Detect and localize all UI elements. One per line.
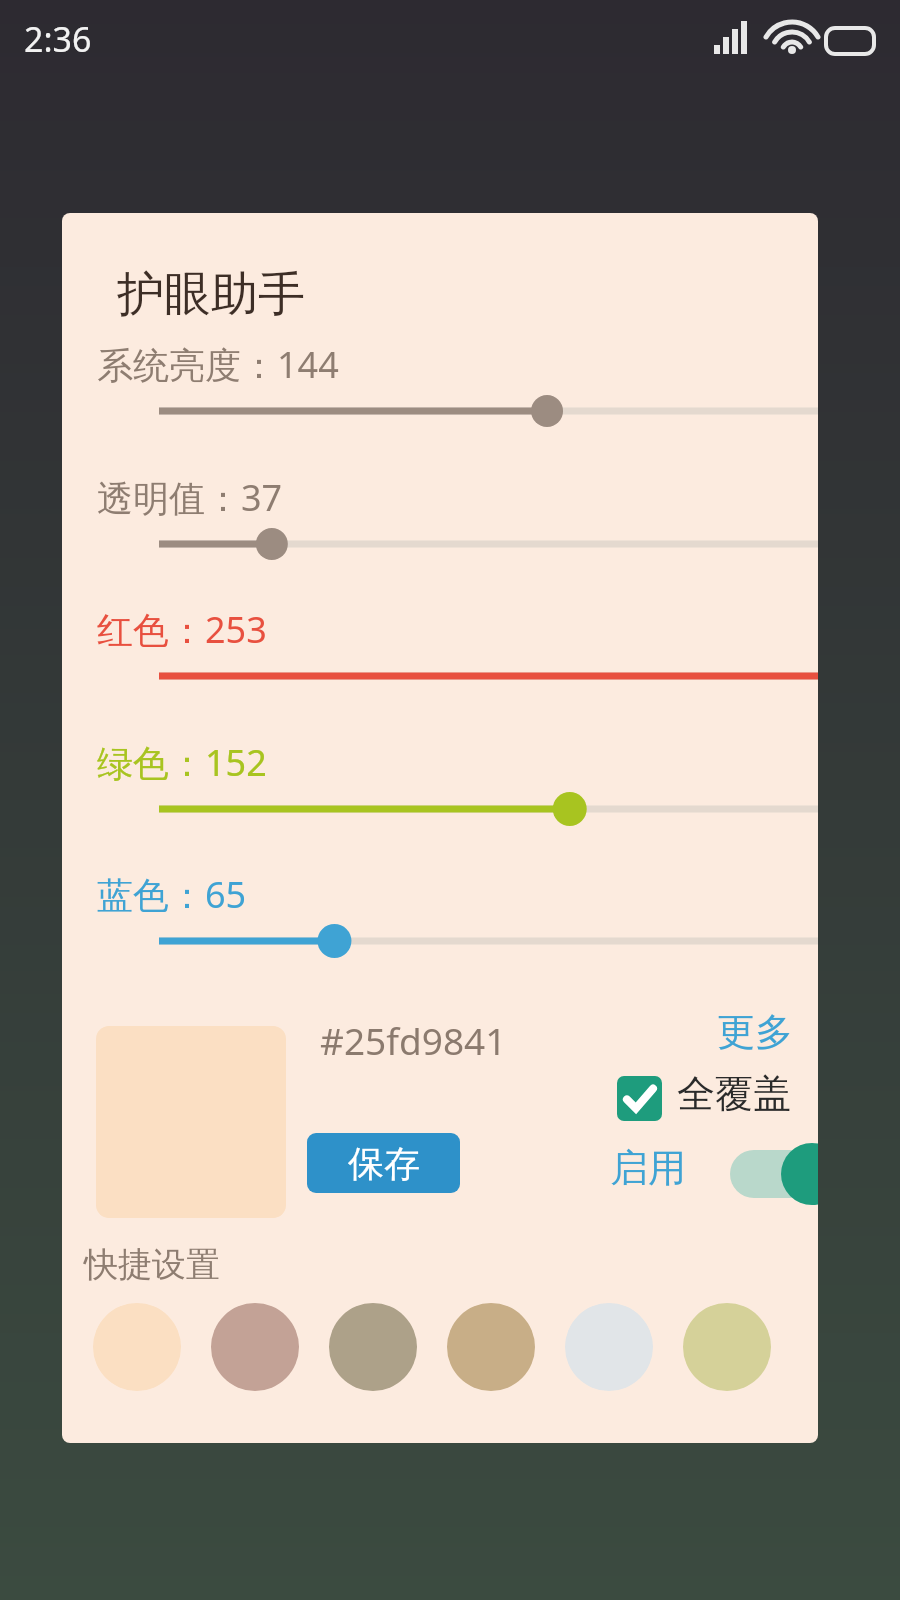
staticText: 护眼助手 <box>117 265 305 324</box>
button[interactable]: Red <box>62 653 818 699</box>
button[interactable]: 保存 <box>307 1133 460 1193</box>
button[interactable]: Preset 3 <box>329 1303 417 1391</box>
staticText: 红色：253 <box>97 605 267 654</box>
button[interactable]: 更多 <box>717 1008 793 1056</box>
staticText: 全覆盖 <box>677 1070 791 1118</box>
button[interactable]: Preset 1 <box>93 1303 181 1391</box>
staticText: 2:36 <box>24 16 92 62</box>
staticText: 蓝色：65 <box>97 870 247 919</box>
button[interactable]: Preset 2 <box>211 1303 299 1391</box>
staticText: 更多 <box>717 1008 793 1056</box>
button[interactable]: Blue <box>62 918 818 964</box>
button[interactable]: Preset 6 <box>683 1303 771 1391</box>
button[interactable]: Preset 4 <box>447 1303 535 1391</box>
staticText: 启用 <box>610 1144 686 1192</box>
staticText: 保存 <box>348 1141 420 1186</box>
button[interactable]: 启用 <box>602 1138 818 1198</box>
staticText: 绿色：152 <box>97 738 267 787</box>
button[interactable]: Green <box>62 786 818 832</box>
staticText: 透明值：37 <box>97 473 283 522</box>
staticText: 快捷设置 <box>84 1243 220 1286</box>
button[interactable]: 全覆盖 <box>617 1070 818 1126</box>
staticText: #25fd9841 <box>320 1015 507 1065</box>
staticText: 系统亮度：144 <box>97 340 339 389</box>
button[interactable]: System brightness <box>62 388 818 434</box>
button[interactable]: Opacity <box>62 521 818 567</box>
button[interactable]: Preset 5 <box>565 1303 653 1391</box>
